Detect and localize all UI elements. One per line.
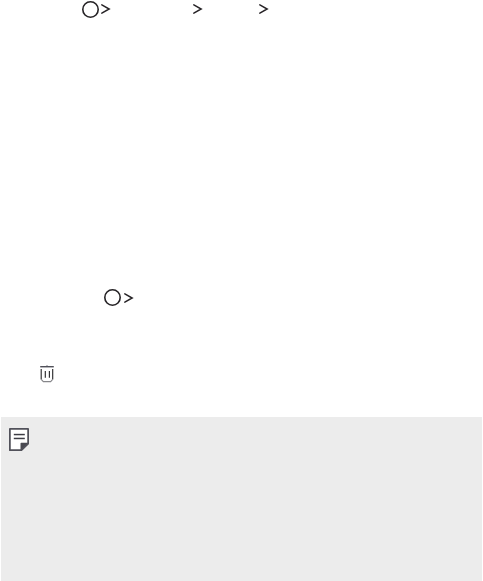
button[interactable]: Parent folder (113, 0, 202, 19)
button[interactable]: Open item (104, 289, 134, 306)
button[interactable]: Home (82, 0, 111, 19)
button[interactable]: Current folder (204, 0, 268, 19)
button[interactable]: Note (9, 428, 29, 451)
button[interactable]: Delete (40, 365, 54, 382)
